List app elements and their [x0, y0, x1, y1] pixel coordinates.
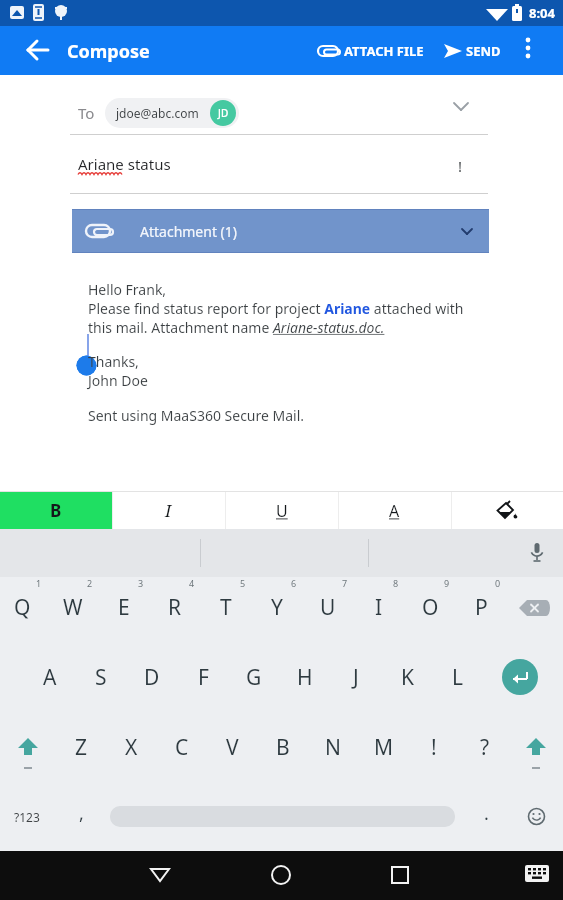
staticText: H — [297, 663, 313, 692]
staticText: Compose — [67, 39, 150, 64]
button[interactable]: U — [225, 492, 338, 529]
staticText: L — [452, 663, 464, 692]
staticText: 8:04 — [529, 4, 555, 22]
staticText: 3 — [138, 577, 144, 589]
staticText: ! — [431, 733, 437, 762]
staticText: 6 — [291, 577, 297, 589]
staticText: E — [118, 593, 130, 622]
button[interactable] — [523, 737, 549, 773]
staticText: W — [63, 593, 83, 622]
staticText: V — [226, 733, 239, 762]
staticText: S — [95, 663, 107, 692]
button[interactable]: A — [338, 492, 451, 529]
staticText: Z — [75, 733, 88, 762]
staticText: JD — [218, 106, 229, 120]
button[interactable]: ATTACH FILE — [316, 36, 424, 66]
staticText: Thanks, — [88, 352, 139, 371]
staticText: B — [276, 733, 290, 762]
staticText: R — [168, 593, 182, 622]
staticText: C — [175, 733, 189, 762]
staticText: I — [165, 499, 172, 522]
button[interactable] — [502, 659, 538, 695]
staticText: K — [401, 663, 414, 692]
staticText: Hello Frank, — [88, 280, 167, 299]
staticText: 4 — [189, 577, 195, 589]
button[interactable]: SEND — [443, 36, 501, 66]
staticText: Attachment (1) — [140, 222, 238, 241]
button[interactable] — [15, 737, 41, 773]
button[interactable]: I — [112, 492, 225, 529]
staticText: Ariane status — [78, 154, 171, 174]
staticText: ! — [458, 156, 463, 176]
staticText: SEND — [466, 42, 501, 60]
staticText: jdoe@abc.com — [116, 105, 199, 121]
staticText: 2 — [87, 577, 93, 589]
staticText: I — [375, 593, 383, 622]
staticText: N — [325, 733, 341, 762]
button[interactable] — [525, 865, 549, 883]
staticText: 1 — [36, 577, 42, 589]
staticText: U — [320, 593, 336, 622]
staticText: B — [50, 499, 62, 522]
staticText: J — [353, 663, 359, 692]
button[interactable] — [384, 859, 416, 891]
staticText: U — [276, 500, 288, 522]
staticText: 0 — [495, 577, 501, 589]
button[interactable] — [518, 597, 550, 619]
staticText: G — [246, 663, 262, 692]
staticText: T — [220, 593, 232, 622]
staticText: Sent using MaaS360 Secure Mail. — [88, 406, 305, 425]
button[interactable] — [22, 34, 54, 66]
staticText: F — [198, 663, 209, 692]
staticText: Q — [14, 593, 31, 622]
staticText: Please find status report for project Ar… — [88, 299, 464, 318]
button[interactable]: jdoe@abc.com — [105, 98, 239, 128]
staticText: , — [79, 801, 84, 826]
staticText: D — [144, 663, 160, 692]
staticText: To — [78, 103, 95, 123]
staticText: A — [389, 500, 400, 522]
staticText: X — [125, 733, 138, 762]
button[interactable] — [144, 859, 176, 891]
button[interactable]: Attachment (1) — [72, 209, 489, 253]
staticText: O — [422, 593, 439, 622]
staticText: ATTACH FILE — [344, 42, 424, 60]
staticText: 8 — [393, 577, 399, 589]
staticText: Y — [271, 593, 283, 622]
staticText: this mail. Attachment name Ariane-status… — [88, 318, 385, 337]
staticText: 7 — [342, 577, 348, 589]
staticText: John Doe — [88, 371, 148, 390]
button[interactable] — [451, 492, 563, 529]
staticText: ?123 — [14, 809, 40, 825]
staticText: M — [374, 733, 394, 762]
button[interactable] — [265, 859, 297, 891]
button[interactable] — [514, 32, 542, 64]
staticText: . — [484, 801, 489, 826]
staticText: 5 — [240, 577, 246, 589]
button[interactable]: B — [0, 492, 112, 529]
staticText: 9 — [444, 577, 450, 589]
staticText: P — [475, 593, 488, 622]
staticText: A — [43, 663, 57, 692]
staticText: ? — [480, 733, 490, 762]
